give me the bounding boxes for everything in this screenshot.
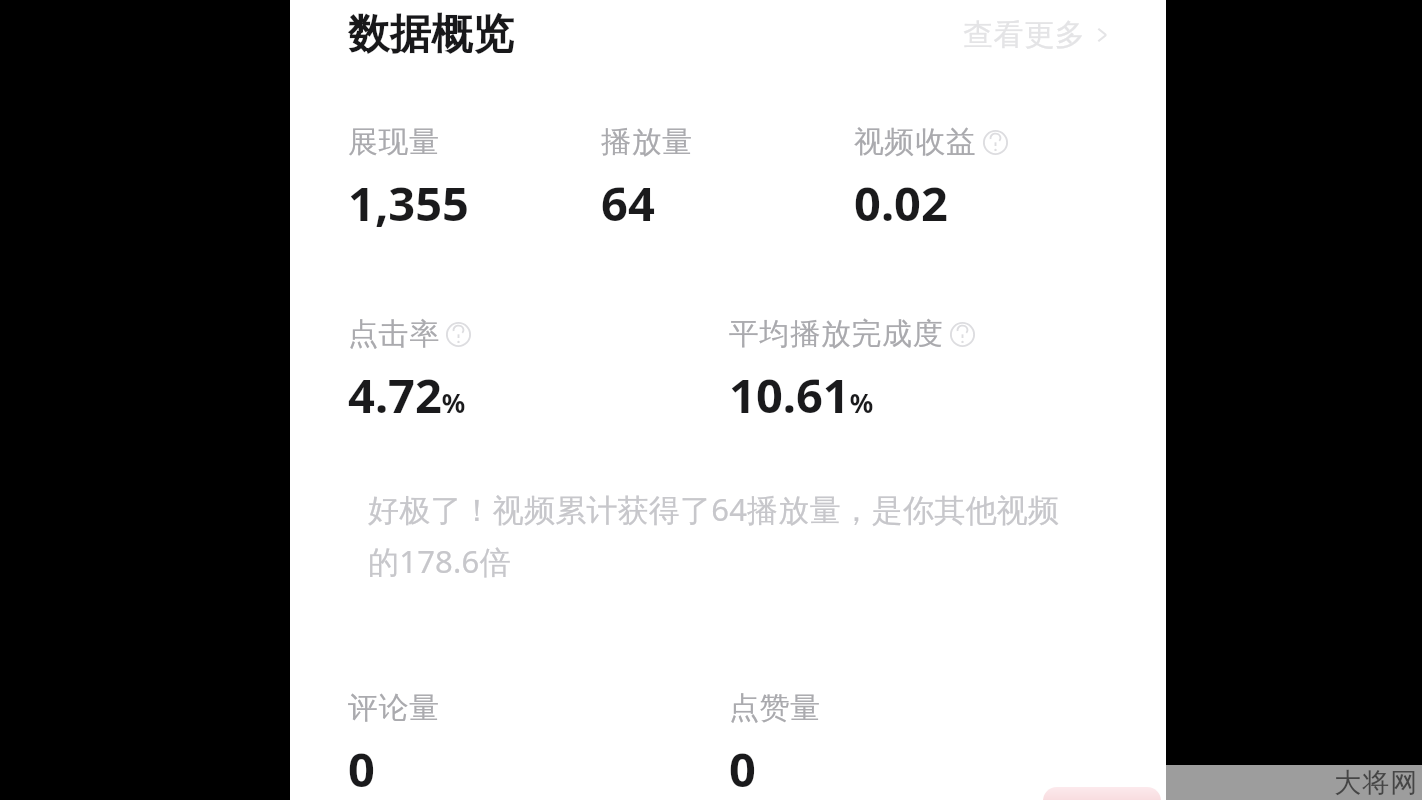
staticText: 平均播放完成度 (729, 315, 944, 353)
other: Help (445, 321, 472, 348)
staticText: 10.61% (729, 363, 874, 427)
staticText: 0 (729, 737, 756, 800)
staticText: 评论量 (348, 689, 440, 727)
staticText: 点赞量 (729, 689, 821, 727)
staticText: 0 (348, 737, 375, 800)
button[interactable]: 点击率 (348, 315, 472, 427)
button[interactable]: 播放量 (601, 123, 693, 235)
button[interactable]: 评论量 (348, 689, 440, 800)
staticText: 大将网 (1334, 766, 1418, 800)
other: Help (982, 129, 1009, 156)
staticText: 1,355 (348, 171, 469, 235)
staticText: 4.72% (348, 363, 466, 427)
staticText: 播放量 (601, 123, 693, 161)
staticText: 点击率 (348, 315, 440, 353)
button[interactable]: 视频收益 (854, 123, 1009, 235)
staticText: 展现量 (348, 123, 440, 161)
other: More (1095, 22, 1110, 48)
button[interactable]: 查看更多 (963, 16, 1110, 54)
other: Help (949, 321, 976, 348)
button[interactable]: 数据概览 (348, 9, 514, 61)
staticText: 0.02 (854, 171, 948, 235)
button[interactable]: 平均播放完成度 (729, 315, 976, 427)
staticText: 64 (601, 171, 655, 235)
staticText: 数据概览 (348, 9, 514, 61)
button[interactable]: 展现量 (348, 123, 469, 235)
staticText: 好极了！视频累计获得了64播放量，是你其他视频的178.6倍 (368, 488, 1082, 582)
staticText: 查看更多 (963, 16, 1086, 54)
staticText: 视频收益 (854, 123, 977, 161)
button[interactable]: 点赞量 (729, 689, 821, 800)
